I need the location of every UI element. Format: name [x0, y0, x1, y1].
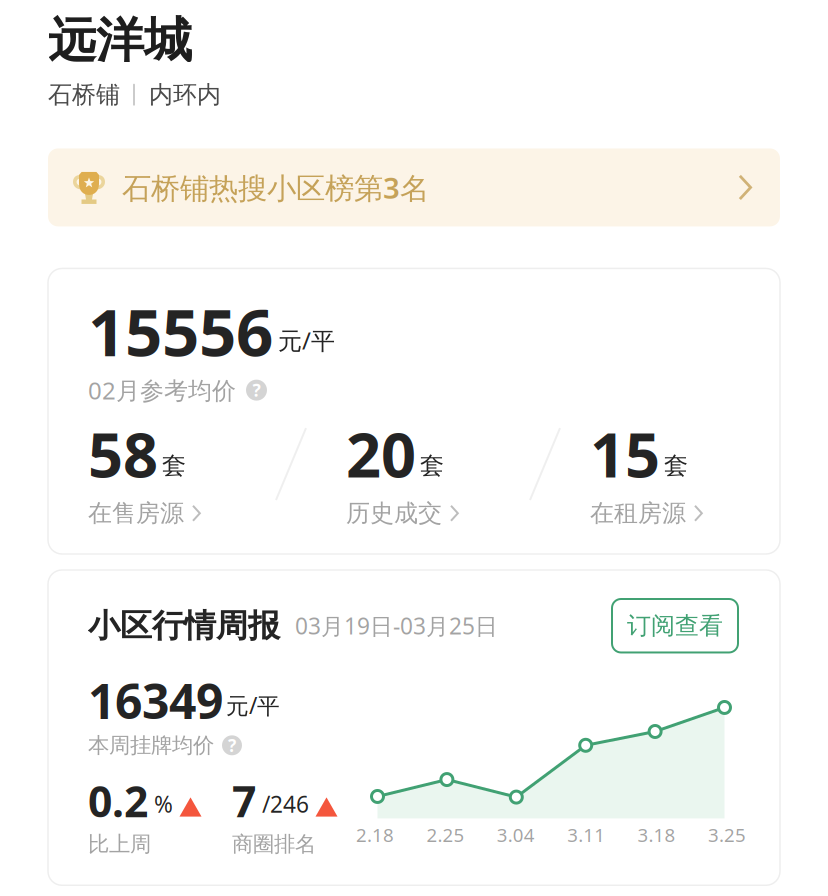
staticText: 石桥铺热搜小区榜第3名	[122, 168, 429, 207]
staticText: 套	[664, 451, 688, 480]
staticText: %	[154, 789, 173, 819]
button[interactable]: 订阅查看	[612, 599, 738, 652]
button[interactable]: 石桥铺热搜小区榜第3名	[48, 148, 780, 226]
staticText: ?	[252, 379, 260, 402]
button[interactable]: 20	[346, 413, 536, 528]
staticText: 58	[88, 413, 158, 494]
staticText: 7	[232, 772, 256, 829]
staticText: 商圈排名	[232, 831, 316, 857]
staticText: 石桥铺	[48, 80, 120, 109]
staticText: 15	[590, 413, 660, 494]
button[interactable]: 58	[88, 413, 278, 528]
staticText: 内环内	[149, 80, 221, 109]
staticText: 02月参考均价	[88, 374, 236, 406]
staticText: 元/平	[226, 690, 280, 720]
staticText: 3.25	[708, 822, 746, 847]
staticText: 在租房源	[590, 498, 686, 528]
staticText: 03月19日-03月25日	[295, 611, 498, 641]
staticText: 16349	[88, 668, 223, 732]
staticText: 订阅查看	[627, 611, 723, 640]
staticText: 15556	[88, 287, 273, 374]
staticText: 套	[162, 451, 186, 480]
staticText: 2.25	[426, 822, 464, 847]
staticText: 本周挂牌均价	[88, 732, 214, 758]
staticText: 比上周	[88, 831, 151, 857]
staticText: 3.04	[497, 822, 535, 847]
staticText: 套	[420, 451, 444, 480]
staticText: ?	[228, 734, 236, 757]
staticText: 3.18	[638, 822, 676, 847]
staticText: 远洋城	[48, 11, 192, 70]
staticText: 0.2	[88, 772, 148, 829]
staticText: 2.18	[356, 822, 394, 847]
staticText: 20	[346, 413, 416, 494]
button[interactable]: 15	[590, 413, 780, 528]
staticText: 历史成交	[346, 498, 442, 528]
staticText: 小区行情周报	[88, 606, 280, 645]
staticText: /246	[262, 789, 309, 819]
staticText: 在售房源	[88, 498, 184, 528]
staticText: 3.11	[567, 822, 605, 847]
staticText: 元/平	[278, 324, 335, 356]
